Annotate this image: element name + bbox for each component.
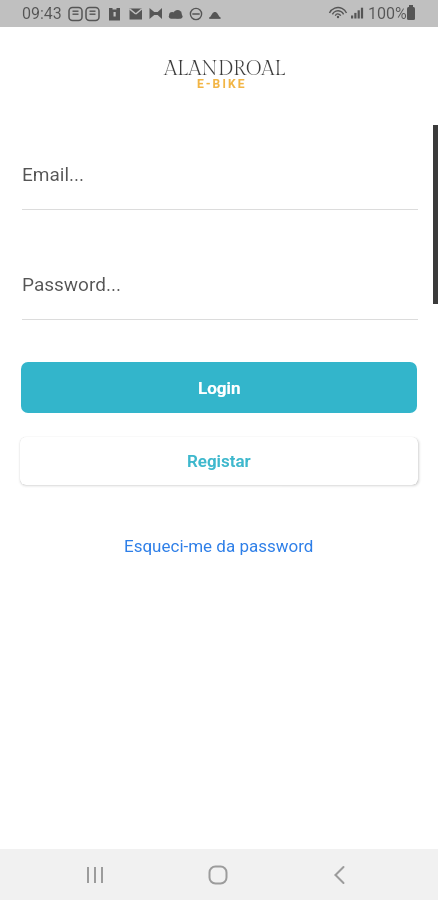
button[interactable]: Back bbox=[317, 849, 365, 900]
staticText: E-BIKE bbox=[197, 77, 247, 91]
staticText: Esqueci-me da password bbox=[124, 536, 314, 556]
staticText: 09:43 bbox=[22, 4, 62, 23]
staticText: Password... bbox=[22, 273, 121, 295]
button[interactable]: Email... bbox=[22, 160, 418, 211]
staticText: Login bbox=[198, 378, 241, 398]
button[interactable]: Recent apps bbox=[71, 849, 119, 900]
staticText: ALANDROAL bbox=[164, 57, 286, 81]
staticText: 100% bbox=[368, 4, 407, 23]
button[interactable]: Password... bbox=[22, 270, 418, 321]
button[interactable]: Esqueci-me da password bbox=[114, 530, 324, 562]
staticText: Email... bbox=[22, 163, 85, 185]
button[interactable]: Login bbox=[21, 362, 417, 413]
button[interactable]: Home bbox=[194, 849, 242, 900]
button[interactable]: Registar bbox=[20, 437, 418, 485]
staticText: Registar bbox=[187, 451, 251, 471]
